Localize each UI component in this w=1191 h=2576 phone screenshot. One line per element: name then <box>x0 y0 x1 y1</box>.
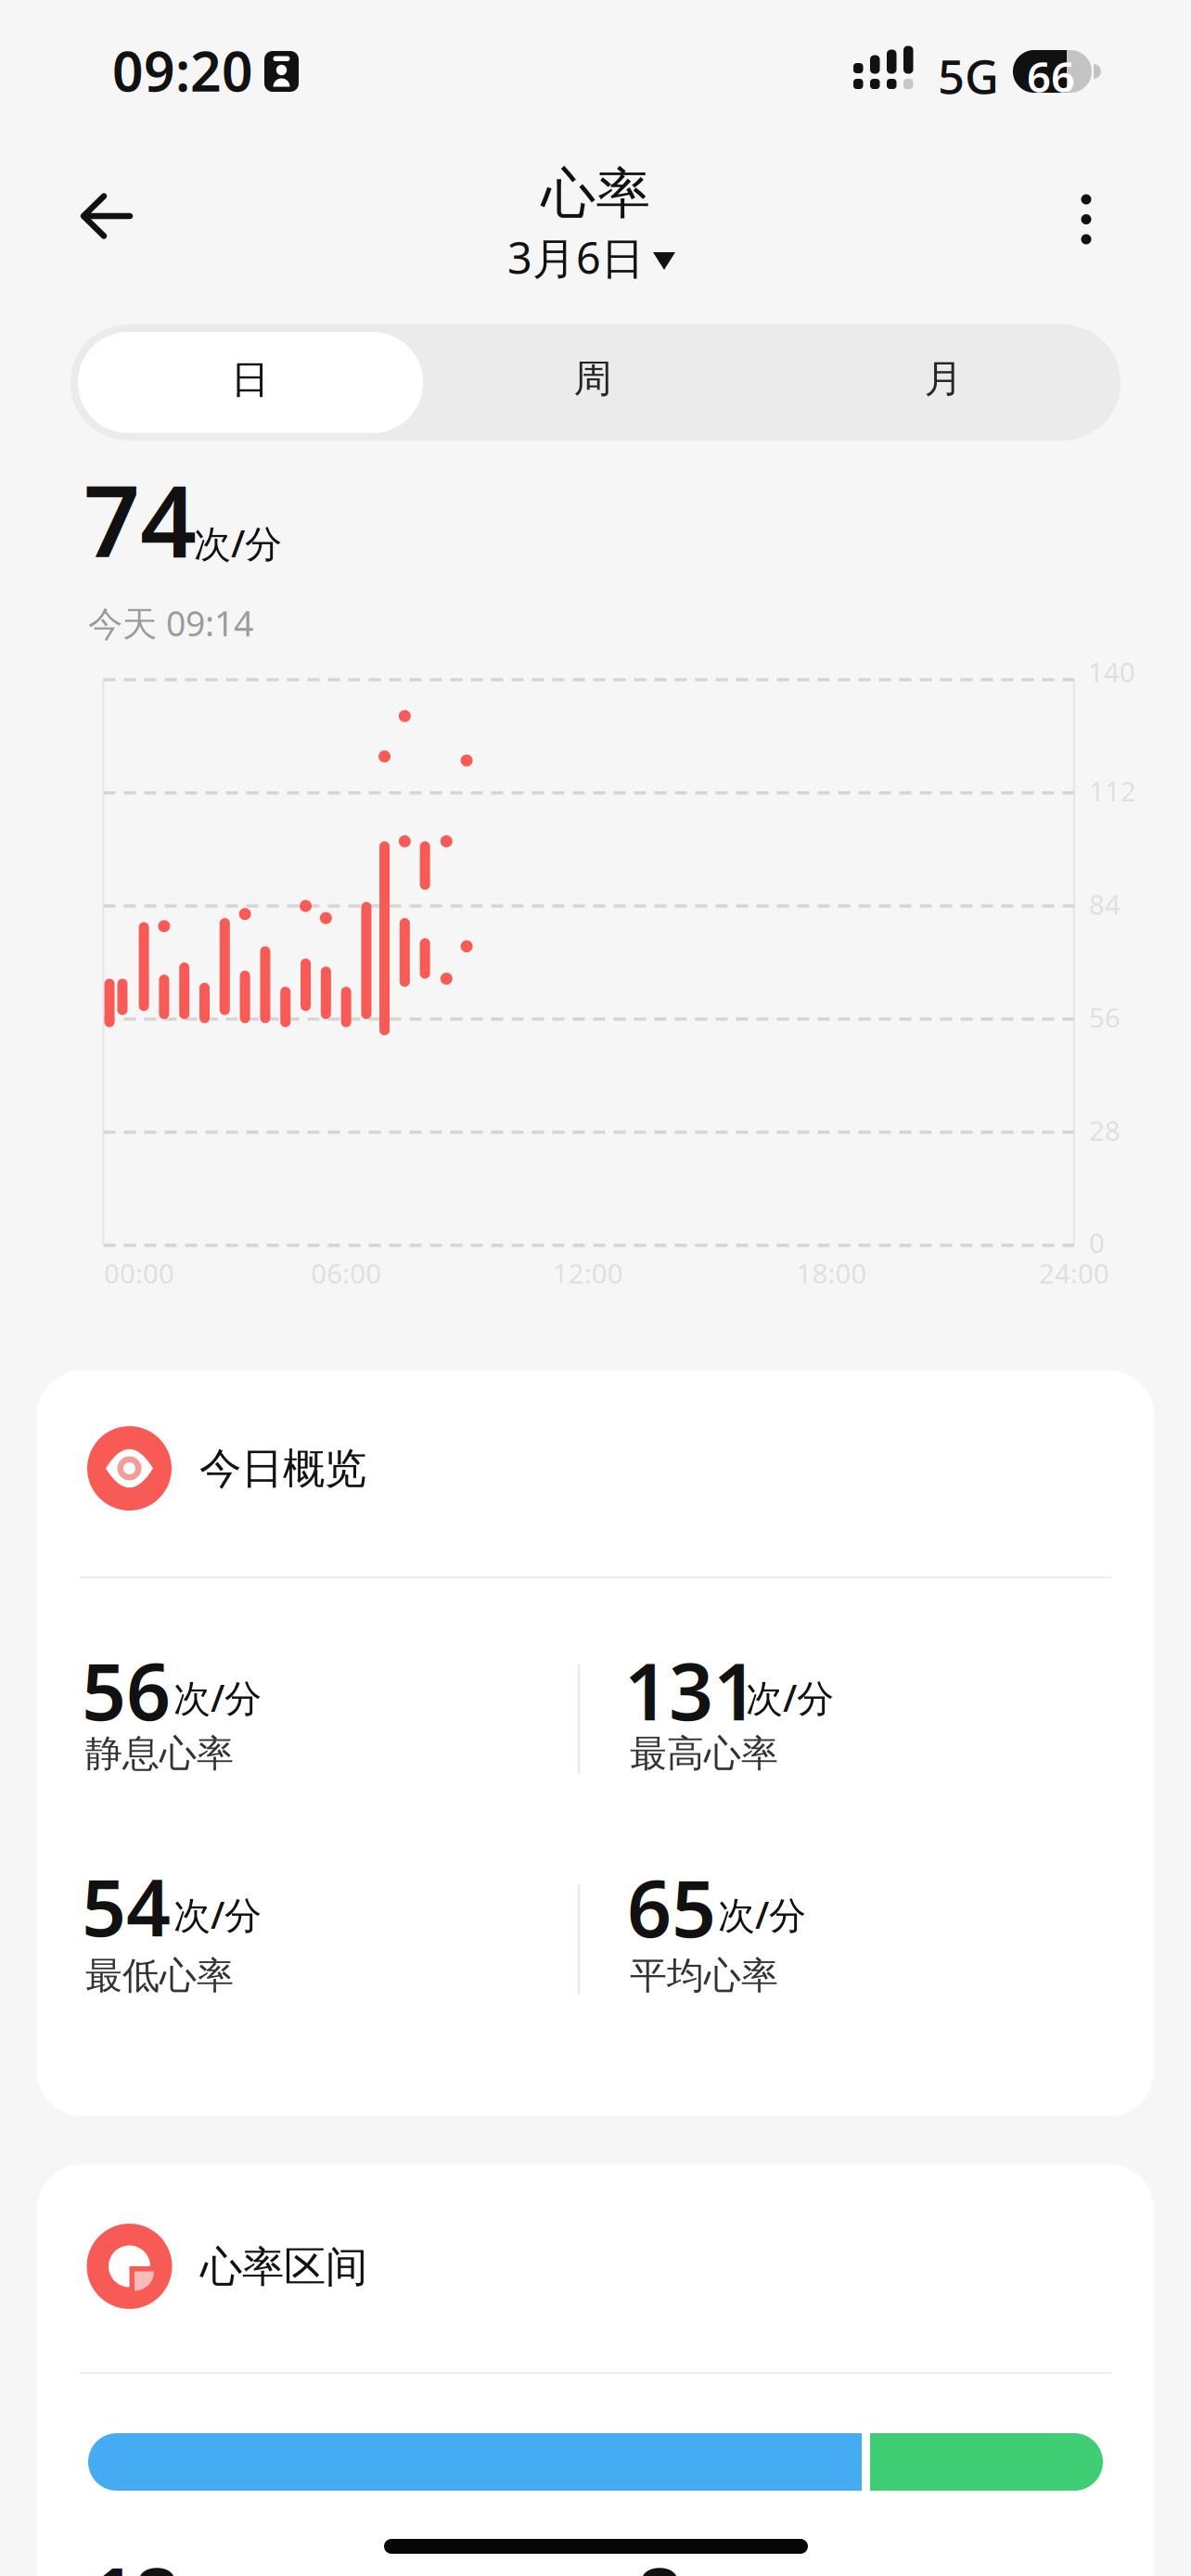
staticText: 最低心率 <box>85 1953 234 1998</box>
staticText: 112 <box>1089 773 1136 809</box>
staticText: 74 <box>83 453 197 585</box>
staticText: 平均心率 <box>630 1953 778 1998</box>
staticText: 140 <box>1088 654 1135 690</box>
staticText: 28 <box>1089 1112 1121 1148</box>
staticText: 18 <box>90 2543 179 2576</box>
staticText: 24:00 <box>1039 1255 1109 1291</box>
staticText: 12:00 <box>553 1255 623 1291</box>
staticText: 84 <box>1089 886 1121 922</box>
staticText: 54 <box>82 1855 171 1958</box>
staticText: 65 <box>627 1855 716 1959</box>
button[interactable]: 月 <box>768 325 1113 440</box>
staticText: 周 <box>574 355 612 402</box>
staticText: 今日概览 <box>199 1443 366 1495</box>
button[interactable]: 日 <box>78 325 423 440</box>
staticText: 56 <box>1089 999 1121 1035</box>
staticText: 18:00 <box>796 1255 867 1291</box>
staticText: 日 <box>231 356 269 403</box>
staticText: 次/分 <box>173 1673 262 1722</box>
button[interactable]: More options <box>1058 174 1114 263</box>
staticText: 次/分 <box>718 1890 806 1939</box>
staticText: 3月6日 <box>507 229 645 286</box>
staticText: 8 <box>637 2543 682 2576</box>
staticText: 次/分 <box>173 1890 262 1939</box>
button[interactable]: 周 <box>423 325 768 440</box>
staticText: 09:20 <box>112 34 253 107</box>
staticText: 今天 09:14 <box>88 600 253 646</box>
staticText: 心率 <box>541 160 651 227</box>
staticText: 月 <box>924 355 962 402</box>
staticText: 静息心率 <box>85 1731 234 1776</box>
staticText: 0 <box>1089 1224 1105 1261</box>
staticText: 66 <box>1027 48 1075 104</box>
staticText: 最高心率 <box>630 1731 778 1776</box>
staticText: 06:00 <box>311 1255 381 1291</box>
staticText: 5G <box>938 45 999 107</box>
staticText: 56 <box>82 1639 171 1742</box>
button[interactable]: 心率 <box>401 153 790 306</box>
staticText: 次/分 <box>194 518 282 568</box>
staticText: 心率区间 <box>200 2241 367 2293</box>
staticText: 次/分 <box>746 1673 834 1722</box>
staticText: 00:00 <box>104 1255 174 1291</box>
button[interactable]: Back <box>59 174 152 258</box>
staticText: 131 <box>624 1639 758 1742</box>
